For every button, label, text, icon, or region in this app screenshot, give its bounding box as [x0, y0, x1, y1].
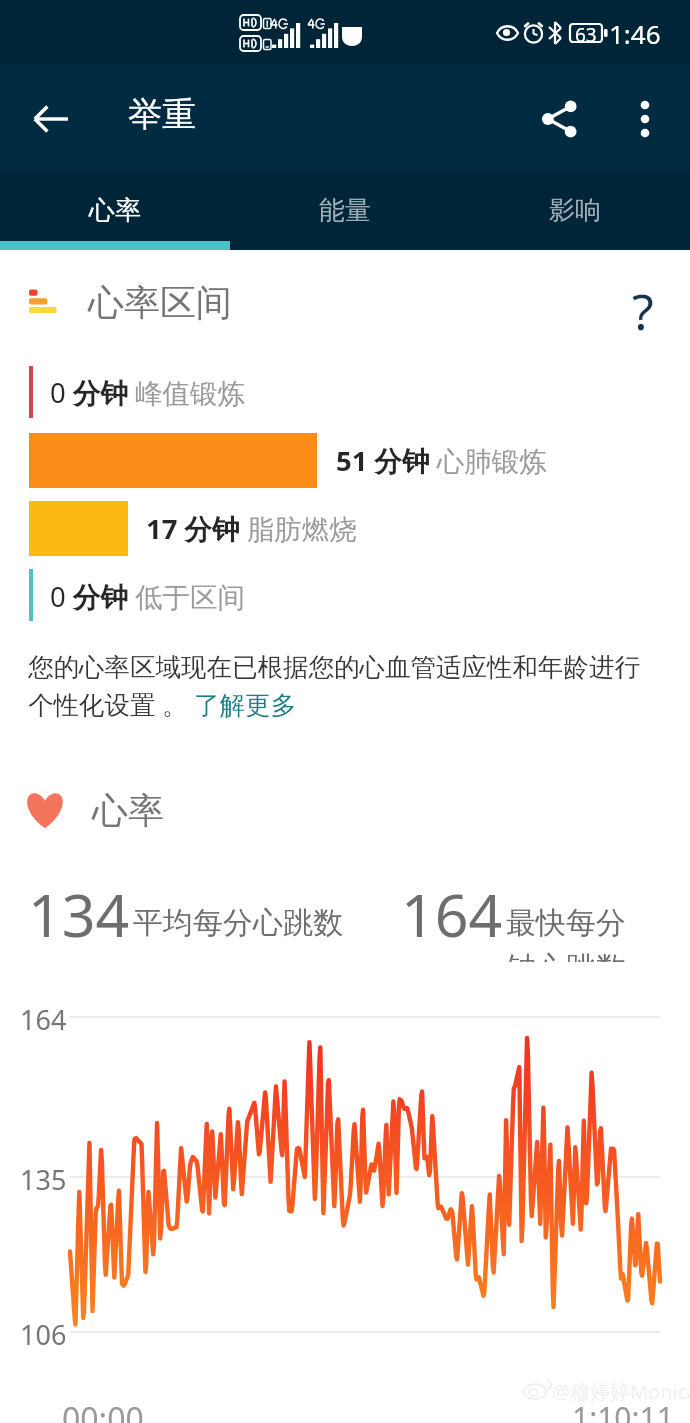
staticText: 1:10:11: [572, 1397, 674, 1423]
staticText: 63: [575, 22, 597, 48]
button[interactable]: Share: [522, 81, 598, 157]
staticText: 164: [401, 874, 503, 954]
staticText: 0 分钟 低于区间: [50, 578, 246, 616]
staticText: 您的心率区域现在已根据您的心血管适应性和年龄进行个性化设置 。 了解更多: [28, 651, 656, 722]
button[interactable]: 影响: [460, 172, 690, 250]
button[interactable]: Help: [612, 277, 674, 339]
staticText: 心率区间: [88, 280, 232, 325]
staticText: 影响: [549, 194, 601, 227]
button[interactable]: More options: [608, 82, 682, 156]
staticText: 最快每分 钟心跳数: [506, 904, 626, 962]
staticText: 134: [28, 874, 130, 954]
button[interactable]: 心率: [0, 172, 230, 250]
staticText: ?: [632, 277, 654, 339]
staticText: 51 分钟 心肺锻炼: [336, 442, 547, 480]
staticText: 00:00: [62, 1397, 144, 1423]
staticText: 17 分钟 脂肪燃烧: [146, 510, 357, 548]
staticText: 164: [20, 1001, 67, 1038]
staticText: 心率: [92, 788, 164, 833]
button[interactable]: 能量: [230, 172, 460, 250]
staticText: 0 分钟 峰值锻炼: [50, 374, 246, 412]
staticText: 135: [20, 1161, 67, 1198]
staticText: 平均每分心跳数: [133, 904, 343, 942]
staticText: 1:46: [609, 16, 661, 51]
button[interactable]: Back: [14, 82, 88, 156]
staticText: 能量: [319, 194, 371, 227]
staticText: 106: [20, 1316, 67, 1353]
staticText: 举重: [128, 93, 196, 136]
staticText: 心率: [89, 194, 141, 227]
staticText: @穆婷婷Monica: [552, 1378, 690, 1405]
